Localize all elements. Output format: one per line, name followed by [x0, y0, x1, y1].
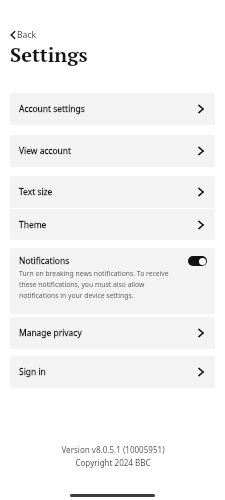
staticText: Account settings [19, 103, 85, 115]
staticText: Manage privacy [19, 327, 82, 339]
staticText: Sign in [19, 366, 46, 378]
staticText: Turn on breaking news notifications. To … [19, 269, 177, 300]
staticText: View account [19, 145, 72, 157]
button[interactable]: Account settings [10, 93, 215, 125]
staticText: Text size [19, 186, 53, 198]
button[interactable]: Text size [10, 176, 215, 208]
staticText: Settings [10, 41, 88, 68]
button[interactable]: Notifications toggle [188, 256, 207, 266]
staticText: Back [17, 29, 37, 41]
button[interactable]: Back [7, 26, 39, 44]
staticText: Copyright 2024 BBC [75, 457, 151, 468]
button[interactable]: Theme [10, 209, 215, 240]
staticText: Version v8.0.5.1 (10005951) [61, 444, 165, 455]
staticText: Notifications [19, 255, 70, 267]
staticText: Theme [19, 219, 47, 231]
button[interactable]: Sign in [10, 356, 215, 388]
button[interactable]: View account [10, 135, 215, 167]
button[interactable]: Manage privacy [10, 317, 215, 349]
